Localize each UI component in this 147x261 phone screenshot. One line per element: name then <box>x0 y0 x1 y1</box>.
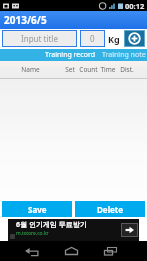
button[interactable]: Open advertisement <box>121 223 138 237</box>
button[interactable]: Recent apps <box>92 243 129 259</box>
button[interactable]: 6월 인기게임 무료받기 <box>8 219 139 241</box>
staticText: Kg <box>108 33 120 45</box>
button[interactable]: Back <box>13 243 50 259</box>
button[interactable]: Delete <box>75 201 145 217</box>
staticText: 6월 인기게임 무료받기 <box>16 220 87 230</box>
staticText: Set <box>65 65 75 74</box>
staticText: Name <box>21 65 40 74</box>
staticText: Save <box>28 204 47 215</box>
staticText: Training note <box>102 50 146 60</box>
button[interactable]: Training record <box>43 49 97 61</box>
button[interactable]: Add record <box>124 30 145 47</box>
staticText: Training record <box>45 50 95 60</box>
button[interactable]: Input title <box>2 30 77 47</box>
staticText: Input title <box>21 33 58 44</box>
staticText: Dist. <box>120 65 134 74</box>
staticText: Delete <box>97 204 124 215</box>
button[interactable]: 0 <box>80 30 105 47</box>
staticText: m.tstore.co.kr <box>16 230 49 237</box>
staticText: 00:12 <box>125 1 145 11</box>
staticText: Count <box>79 65 98 74</box>
staticText: 2013/6/5 <box>4 13 47 27</box>
button[interactable]: Home <box>50 243 92 259</box>
button[interactable]: Training note <box>97 49 147 61</box>
staticText: Time <box>100 65 116 74</box>
button[interactable]: Save <box>2 201 72 217</box>
staticText: 0 <box>90 33 95 44</box>
